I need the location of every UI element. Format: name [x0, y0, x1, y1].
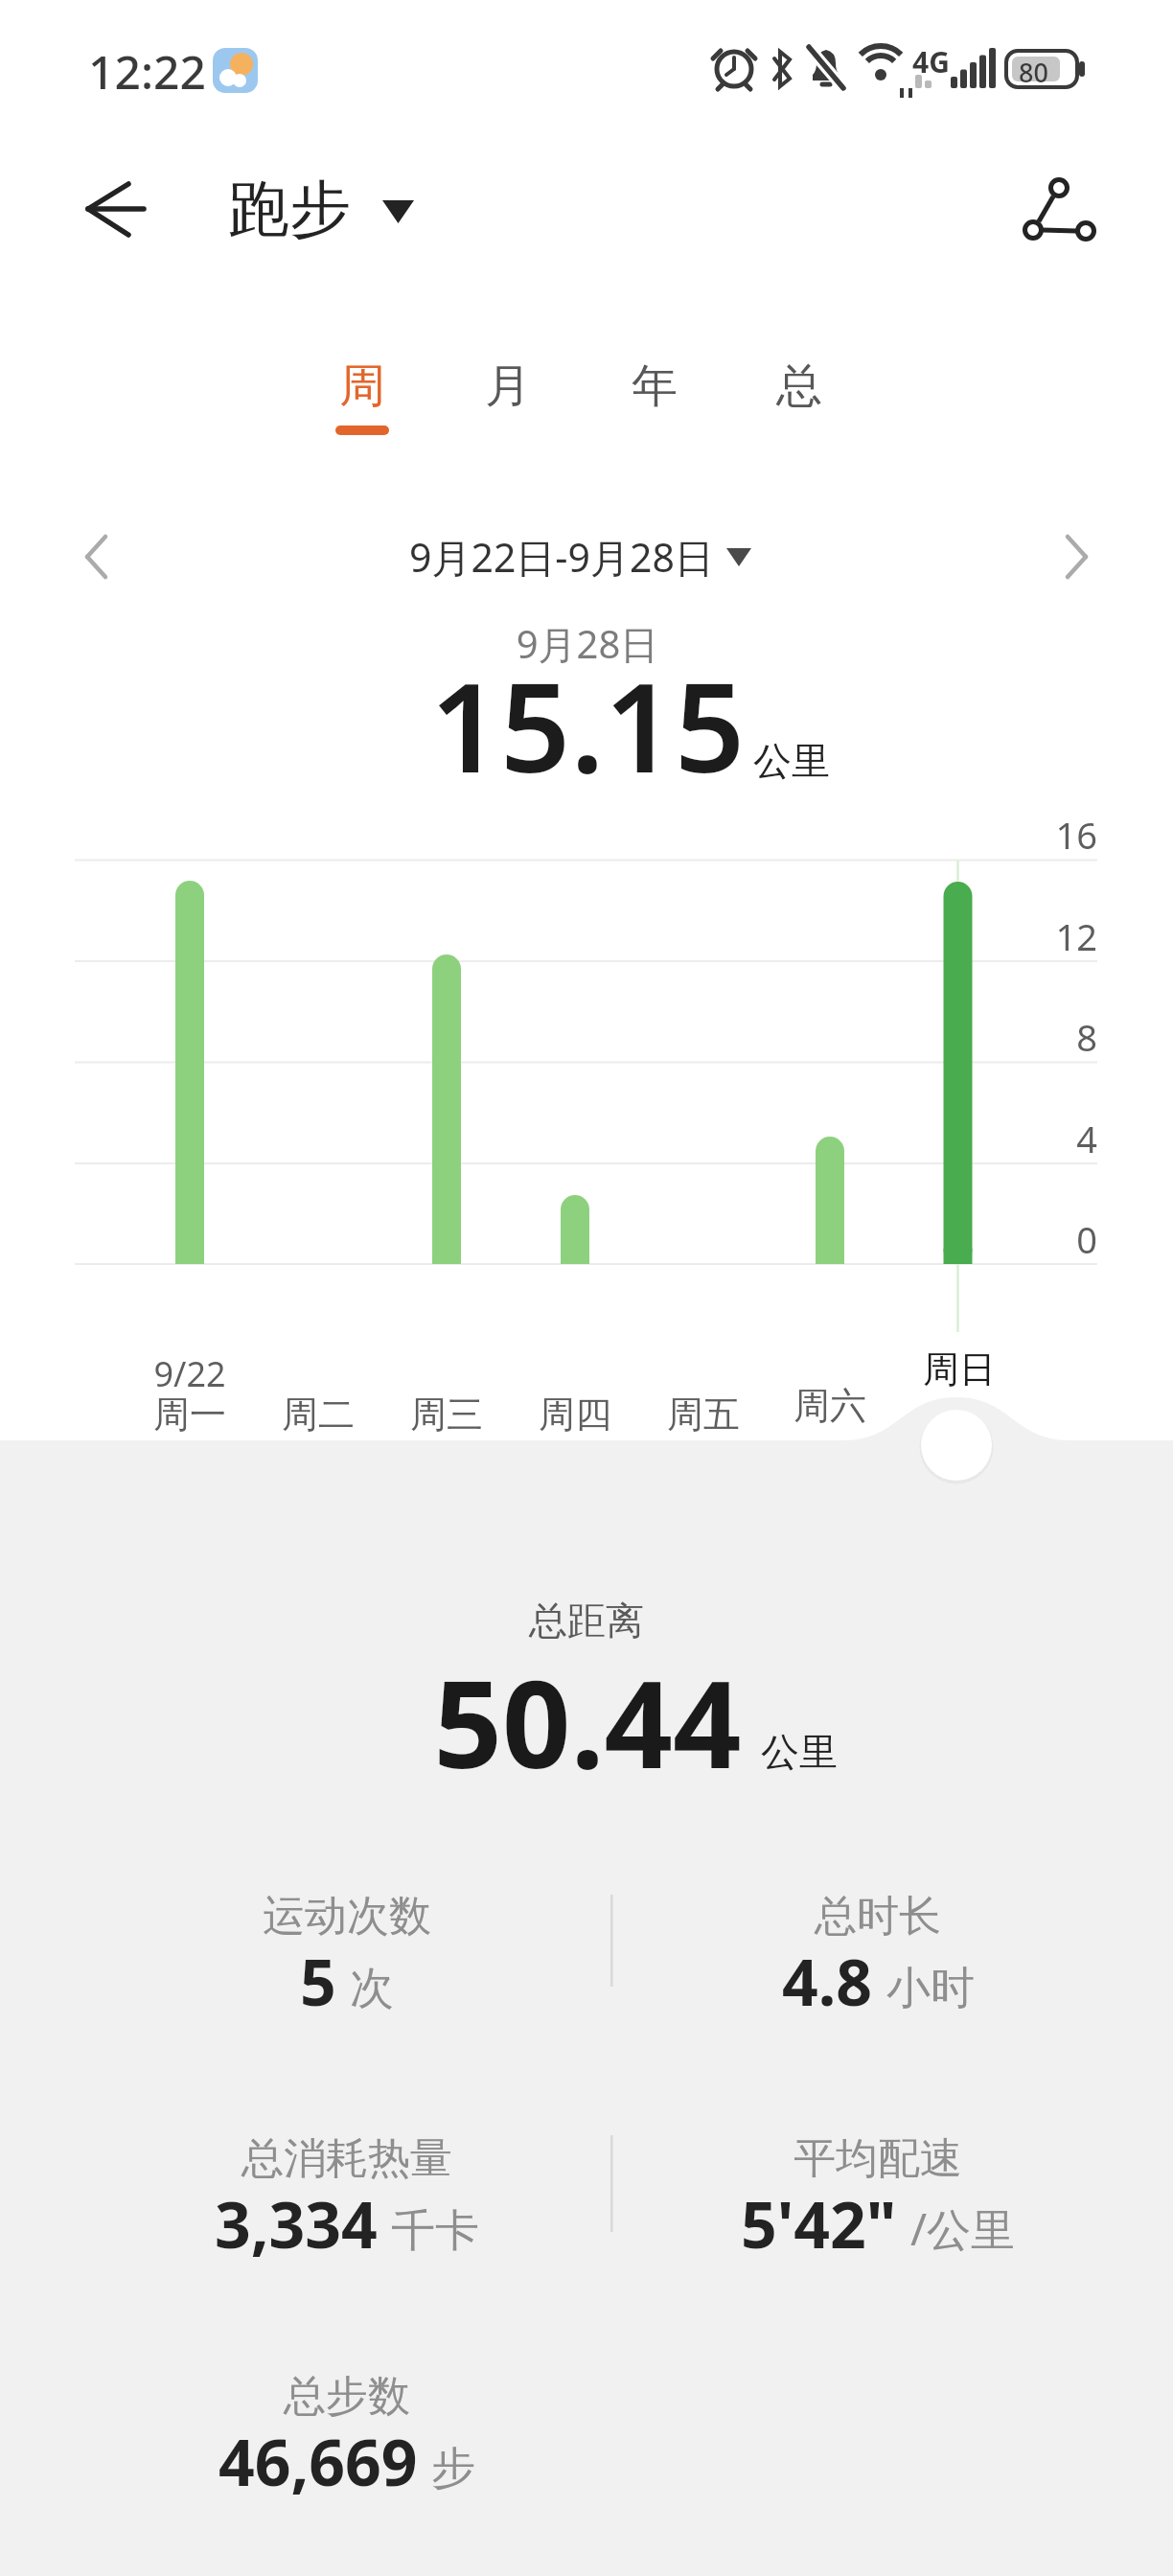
staticText: 0: [906, 1214, 1097, 1264]
staticText: 4G: [912, 42, 950, 81]
staticText: 总: [776, 357, 822, 415]
staticText: 运动次数: [155, 1890, 539, 1943]
button[interactable]: [1002, 159, 1108, 264]
staticText: 9/22: [0, 1350, 381, 1397]
staticText: 46,669: [218, 2418, 418, 2504]
staticText: 千卡: [391, 2203, 479, 2259]
staticText: 跑步: [228, 171, 351, 248]
staticText: 平均配速: [686, 2132, 1069, 2185]
staticText: 15.15: [252, 641, 923, 808]
staticText: 5'42": [741, 2180, 897, 2266]
staticText: 小时: [886, 1961, 975, 2016]
staticText: 16: [906, 810, 1097, 860]
button[interactable]: 周: [305, 343, 420, 429]
staticText: 总距离: [395, 1597, 778, 1644]
button[interactable]: [57, 153, 163, 259]
staticText: 80: [1019, 55, 1048, 90]
staticText: 周三: [255, 1391, 638, 1437]
staticText: 4.8: [782, 1938, 873, 2024]
staticText: 公里: [761, 1728, 838, 1776]
staticText: 次: [350, 1961, 394, 2016]
staticText: 周五: [512, 1391, 895, 1437]
staticText: 公里: [753, 737, 830, 785]
staticText: 周一: [0, 1391, 381, 1437]
staticText: 12: [906, 911, 1097, 961]
staticText: 12:22: [88, 40, 206, 103]
staticText: 总时长: [686, 1890, 1069, 1943]
staticText: 9月22日-9月28日: [409, 530, 714, 584]
button[interactable]: [1040, 523, 1126, 590]
staticText: 3,334: [215, 2180, 378, 2266]
button[interactable]: 跑步: [216, 171, 426, 257]
staticText: 周四: [383, 1391, 767, 1437]
staticText: 50.44: [252, 1640, 923, 1803]
staticText: 步: [431, 2441, 475, 2496]
staticText: 总消耗热量: [155, 2132, 539, 2185]
staticText: 总步数: [155, 2370, 539, 2423]
staticText: 周二: [126, 1391, 510, 1437]
staticText: 4: [906, 1114, 1097, 1163]
button[interactable]: [915, 1403, 1000, 1487]
staticText: 年: [632, 357, 678, 415]
staticText: /公里: [910, 2198, 1016, 2259]
button[interactable]: 9月22日-9月28日: [383, 527, 757, 586]
button[interactable]: 总: [742, 343, 857, 429]
button[interactable]: [57, 523, 144, 590]
staticText: 周日: [768, 1346, 1151, 1392]
button[interactable]: 月: [450, 343, 565, 429]
staticText: 9月28日: [396, 617, 779, 670]
staticText: 周: [339, 357, 385, 415]
staticText: 5: [300, 1938, 336, 2024]
staticText: 月: [485, 357, 531, 415]
staticText: 8: [906, 1012, 1097, 1062]
button[interactable]: 年: [597, 343, 712, 429]
staticText: 周六: [638, 1383, 1022, 1429]
